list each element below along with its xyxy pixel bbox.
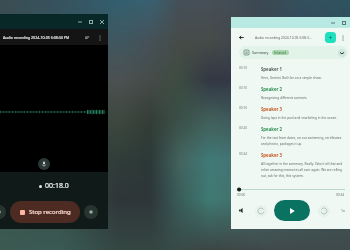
button[interactable]: Close: [96, 15, 107, 29]
button[interactable]: Play: [274, 200, 310, 221]
staticText: 1x: [341, 208, 345, 213]
staticText: Audio recording 2024-10-05 6:08:3...: [255, 35, 312, 40]
staticText: Speaker 1: [261, 66, 282, 72]
button[interactable]: Summary: [239, 46, 348, 59]
button[interactable]: Rewind 10 seconds: [255, 205, 267, 217]
staticText: 00:10: [239, 66, 261, 70]
button[interactable]: Maximize: [85, 15, 96, 29]
staticText: AP: [85, 35, 90, 40]
staticText: Enhanced: [274, 51, 287, 55]
staticText: Summary: [252, 50, 269, 55]
button[interactable]: Gemini: [325, 32, 336, 43]
staticText: Here, Gemini. Both be on a simple show.: [261, 76, 322, 80]
staticText: All together in the summary. Really. Tak…: [261, 162, 345, 178]
button[interactable]: Back: [237, 33, 246, 42]
button[interactable]: Volume: [236, 205, 247, 216]
staticText: 00:00: [237, 193, 246, 197]
staticText: Speaker 3: [261, 106, 282, 112]
staticText: Speaker 2: [261, 126, 282, 132]
staticText: 00:20: [239, 126, 261, 130]
staticText: Speaker 2: [261, 86, 282, 92]
staticText: 00:10: [239, 86, 261, 90]
staticText: Stop recording: [29, 208, 71, 216]
staticText: 00:18.0: [45, 181, 69, 191]
staticText: 00:16: [239, 106, 261, 110]
button[interactable]: More options: [338, 33, 347, 42]
staticText: Audio recording 2024-10-05 6:08:34 PM: [3, 35, 70, 40]
button[interactable]: Playback speed: [337, 205, 348, 216]
button[interactable]: Minimize: [74, 15, 85, 29]
staticText: Speaker 3: [261, 152, 282, 158]
staticText: Recognizing different contents: [261, 96, 307, 100]
staticText: For the text from dates, on our swimming…: [261, 136, 345, 146]
staticText: 00:24: [239, 152, 261, 156]
button[interactable]: Stop recording: [10, 201, 80, 223]
button[interactable]: Microphone: [38, 158, 50, 170]
button[interactable]: More options: [95, 33, 104, 42]
button[interactable]: Maximize: [338, 17, 349, 28]
button[interactable]: Forward 10 seconds: [318, 205, 330, 217]
button[interactable]: Expand summary: [338, 49, 346, 57]
button[interactable]: Save recording: [84, 205, 98, 219]
button[interactable]: Delete recording: [0, 205, 6, 219]
staticText: 00:34: [336, 193, 345, 197]
button[interactable]: Minimize: [327, 17, 338, 28]
staticText: Doing laps in the pool and snorkeling in…: [261, 116, 338, 120]
